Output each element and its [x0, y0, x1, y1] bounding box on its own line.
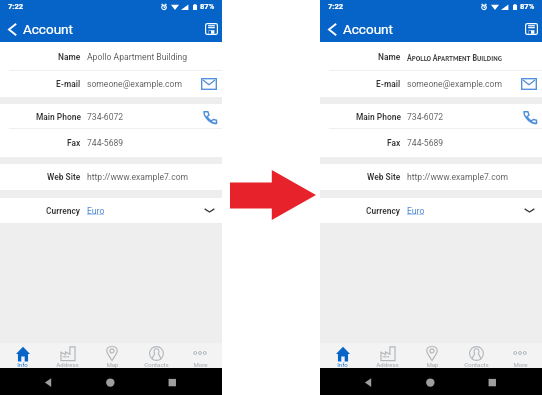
button[interactable]: Info: [0, 343, 45, 368]
staticText: http://www.example7.com: [407, 172, 509, 182]
button[interactable]: Name: [320, 42, 542, 71]
staticText: Web Site: [367, 172, 401, 182]
button[interactable]: Map: [90, 343, 134, 368]
button[interactable]: Main Phone: [320, 104, 542, 129]
button[interactable]: Main Phone: [0, 104, 222, 129]
button[interactable]: Choose currency: [196, 198, 222, 223]
staticText: Info: [17, 361, 28, 368]
button[interactable]: Address: [45, 343, 90, 368]
button[interactable]: Save: [200, 16, 222, 42]
staticText: Main Phone: [356, 112, 401, 122]
button[interactable]: E-mail: [320, 71, 542, 97]
button[interactable]: Choose currency: [516, 198, 542, 223]
button[interactable]: Call: [196, 104, 222, 129]
staticText: Map: [106, 361, 119, 368]
button[interactable]: Back: [320, 16, 344, 42]
button[interactable]: Web Site: [0, 164, 222, 190]
staticText: 734-6072: [407, 112, 444, 122]
button[interactable]: Address: [365, 343, 410, 368]
staticText: Account: [23, 21, 73, 37]
staticText: Currency: [46, 206, 81, 216]
staticText: someone@example.com: [87, 79, 183, 89]
staticText: Account: [343, 21, 393, 37]
staticText: 744-5689: [87, 138, 124, 148]
button[interactable]: Currency: [0, 198, 222, 223]
button[interactable]: E-mail: [0, 71, 222, 97]
staticText: Apollo Apartment Building: [87, 52, 188, 62]
button[interactable]: Fax: [320, 129, 542, 157]
staticText: http://www.example7.com: [87, 172, 189, 182]
staticText: Euro: [87, 206, 105, 216]
staticText: Euro: [407, 206, 425, 216]
button[interactable]: Send e-mail: [516, 71, 542, 97]
button[interactable]: Back: [0, 16, 24, 42]
staticText: More: [513, 361, 528, 368]
staticText: Fax: [67, 138, 81, 148]
staticText: Name: [58, 52, 81, 62]
staticText: Info: [337, 361, 348, 368]
button[interactable]: Send e-mail: [196, 71, 222, 97]
button[interactable]: Contacts: [134, 343, 178, 368]
staticText: Contacts: [464, 361, 489, 368]
staticText: Address: [56, 361, 79, 368]
staticText: Currency: [366, 206, 401, 216]
staticText: 87%: [200, 2, 215, 11]
staticText: 744-5689: [407, 138, 444, 148]
staticText: APOLLO APARTMENT BUILDING: [407, 51, 502, 63]
staticText: E-mail: [56, 79, 81, 89]
button[interactable]: Web Site: [320, 164, 542, 190]
button[interactable]: Info: [320, 343, 365, 368]
button[interactable]: More: [178, 343, 222, 368]
staticText: 7:22: [8, 2, 24, 11]
staticText: 734-6072: [87, 112, 124, 122]
staticText: 87%: [520, 2, 535, 11]
button[interactable]: Map: [410, 343, 454, 368]
button[interactable]: Fax: [0, 129, 222, 157]
staticText: Fax: [387, 138, 401, 148]
staticText: Map: [426, 361, 439, 368]
staticText: someone@example.com: [407, 79, 503, 89]
button[interactable]: More: [498, 343, 542, 368]
staticText: Address: [376, 361, 399, 368]
staticText: Name: [378, 52, 401, 62]
staticText: Web Site: [47, 172, 81, 182]
button[interactable]: Name: [0, 42, 222, 71]
button[interactable]: Call: [516, 104, 542, 129]
staticText: E-mail: [376, 79, 401, 89]
staticText: 7:22: [328, 2, 344, 11]
button[interactable]: Save: [520, 16, 542, 42]
button[interactable]: Contacts: [454, 343, 498, 368]
staticText: Main Phone: [36, 112, 81, 122]
staticText: Contacts: [144, 361, 169, 368]
button[interactable]: Currency: [320, 198, 542, 223]
staticText: More: [193, 361, 208, 368]
